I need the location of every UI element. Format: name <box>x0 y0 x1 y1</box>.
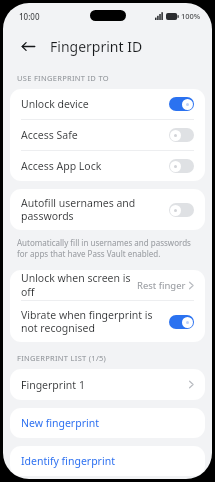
staticText: Fingerprint 1 <box>21 378 189 392</box>
button[interactable]: Unlock when screen is off <box>10 270 205 300</box>
staticText: Identify fingerprint <box>21 454 115 468</box>
button[interactable]: Access Safe <box>10 120 205 150</box>
button[interactable]: Autofill usernames and passwords <box>10 189 205 230</box>
button[interactable]: Unlock device <box>10 89 205 119</box>
staticText: 100% <box>181 11 201 21</box>
staticText: Autofill usernames and passwords <box>21 196 161 223</box>
button[interactable]: On <box>169 315 194 329</box>
button[interactable]: Back <box>16 34 40 58</box>
button[interactable]: Off <box>169 159 194 173</box>
button[interactable]: Fingerprint 1 <box>10 369 205 400</box>
staticText: Fingerprint ID <box>50 37 143 56</box>
button[interactable]: Identify fingerprint <box>10 446 205 476</box>
staticText: Access Safe <box>21 128 161 142</box>
staticText: New fingerprint <box>21 416 99 430</box>
button[interactable]: New fingerprint <box>10 408 205 438</box>
staticText: USE FINGERPRINT ID TO <box>17 73 212 83</box>
staticText: Automatically fill in usernames and pass… <box>17 237 198 259</box>
button[interactable]: Off <box>169 203 194 217</box>
staticText: Rest finger <box>137 279 186 292</box>
staticText: FINGERPRINT LIST (1/5) <box>17 353 212 363</box>
staticText: Access App Lock <box>21 159 161 173</box>
button[interactable]: Access App Lock <box>10 151 205 181</box>
button[interactable]: Off <box>169 128 194 142</box>
button[interactable]: On <box>169 97 194 111</box>
staticText: 10:00 <box>19 11 40 22</box>
staticText: Vibrate when fingerprint is not recognis… <box>21 308 161 335</box>
staticText: Unlock device <box>21 97 161 111</box>
staticText: Unlock when screen is off <box>21 271 137 299</box>
button[interactable]: Vibrate when fingerprint is not recognis… <box>10 301 205 342</box>
